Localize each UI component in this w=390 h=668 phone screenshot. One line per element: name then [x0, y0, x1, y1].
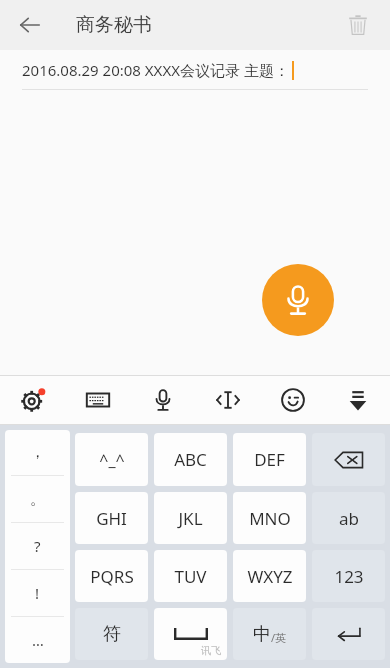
button[interactable]: 中: [233, 608, 306, 660]
button[interactable]: ABC: [154, 433, 227, 486]
staticText: GHI: [96, 507, 127, 530]
staticText: 商务秘书: [76, 13, 152, 37]
staticText: ，: [30, 443, 45, 462]
button[interactable]: ?: [5, 523, 70, 569]
staticText: MNO: [249, 507, 291, 530]
button[interactable]: Emoji: [260, 376, 325, 424]
staticText: TUV: [174, 565, 207, 588]
staticText: 。: [30, 490, 45, 509]
staticText: 2016.08.29 20:08 XXXX会议记录 主题：: [22, 60, 289, 80]
button[interactable]: …: [5, 617, 70, 663]
button[interactable]: ，: [5, 430, 70, 475]
staticText: JKL: [178, 507, 203, 530]
button[interactable]: 符: [75, 608, 148, 660]
button[interactable]: TUV: [154, 550, 227, 602]
button[interactable]: Space: [154, 608, 227, 660]
staticText: /英: [271, 630, 287, 645]
staticText: 123: [334, 565, 364, 588]
button[interactable]: Cursor move: [195, 376, 260, 424]
staticText: …: [32, 630, 44, 650]
staticText: DEF: [254, 448, 285, 471]
button[interactable]: MNO: [233, 492, 306, 544]
button[interactable]: Record voice: [262, 264, 334, 336]
staticText: PQRS: [90, 565, 134, 588]
button[interactable]: Enter: [312, 608, 385, 660]
button[interactable]: ^_^: [75, 433, 148, 486]
button[interactable]: Hide keyboard: [325, 376, 390, 424]
button[interactable]: 。: [5, 476, 70, 522]
button[interactable]: Voice input: [130, 376, 195, 424]
staticText: ?: [34, 536, 41, 556]
button[interactable]: Back: [8, 3, 52, 47]
button[interactable]: Keyboard layout: [65, 376, 130, 424]
button[interactable]: ab: [312, 492, 385, 544]
button[interactable]: GHI: [75, 492, 148, 544]
staticText: ab: [339, 507, 359, 530]
button[interactable]: Backspace: [312, 433, 385, 486]
button[interactable]: 123: [312, 550, 385, 602]
staticText: 中: [253, 623, 271, 646]
button[interactable]: Settings: [0, 376, 65, 424]
staticText: ^_^: [99, 449, 125, 471]
staticText: WXYZ: [247, 565, 293, 588]
button[interactable]: PQRS: [75, 550, 148, 602]
button[interactable]: JKL: [154, 492, 227, 544]
staticText: !: [35, 583, 40, 603]
button[interactable]: DEF: [233, 433, 306, 486]
staticText: 讯飞: [201, 644, 221, 657]
button[interactable]: WXYZ: [233, 550, 306, 602]
staticText: 符: [103, 623, 121, 646]
button[interactable]: !: [5, 570, 70, 616]
staticText: ABC: [174, 448, 207, 471]
button[interactable]: Delete: [336, 3, 380, 47]
